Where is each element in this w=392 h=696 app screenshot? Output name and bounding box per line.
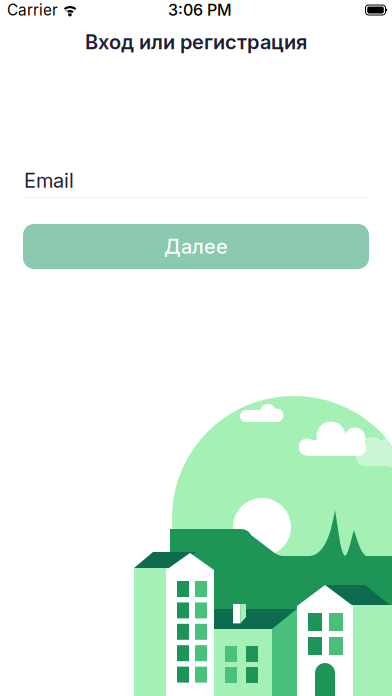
staticText: 3:06 PM <box>168 0 232 20</box>
staticText: Далее <box>164 234 228 259</box>
staticText: Email <box>24 168 74 193</box>
staticText: Carrier <box>7 1 58 19</box>
staticText: Вход или регистрация <box>85 30 307 54</box>
button[interactable]: Далее <box>23 224 369 269</box>
